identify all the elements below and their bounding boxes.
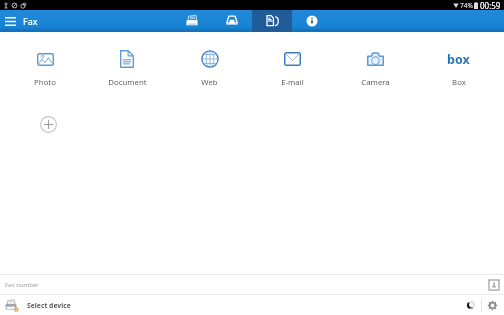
- button[interactable]: Settings: [482, 295, 502, 315]
- staticText: Camera: [361, 77, 390, 88]
- button[interactable]: Photo: [4, 50, 86, 88]
- button[interactable]: Add: [38, 114, 58, 134]
- button[interactable]: Camera: [334, 50, 417, 88]
- staticText: 00:59: [480, 0, 501, 10]
- staticText: Box: [452, 77, 466, 88]
- staticText: Select device: [27, 301, 71, 310]
- button[interactable]: Fax: [252, 10, 292, 32]
- button[interactable]: box: [417, 50, 500, 88]
- button[interactable]: Select device: [0, 295, 79, 315]
- staticText: Document: [108, 77, 147, 88]
- button[interactable]: Document: [86, 50, 168, 88]
- button[interactable]: Fax number: [0, 275, 504, 294]
- button[interactable]: Info: [292, 10, 332, 32]
- button[interactable]: E-mail: [251, 50, 334, 88]
- staticText: Web: [201, 77, 218, 88]
- button[interactable]: Web: [168, 50, 251, 88]
- staticText: Photo: [34, 77, 56, 88]
- button[interactable]: Refresh: [461, 295, 481, 315]
- button[interactable]: Navigation menu: [0, 10, 21, 32]
- button[interactable]: Choose contact: [487, 278, 501, 292]
- button[interactable]: Print: [172, 10, 212, 32]
- staticText: E-mail: [281, 77, 304, 88]
- staticText: 74%: [460, 1, 473, 10]
- staticText: box: [447, 51, 470, 68]
- button[interactable]: Scan: [212, 10, 252, 32]
- staticText: Fax: [23, 15, 38, 27]
- staticText: Fax number: [5, 281, 39, 289]
